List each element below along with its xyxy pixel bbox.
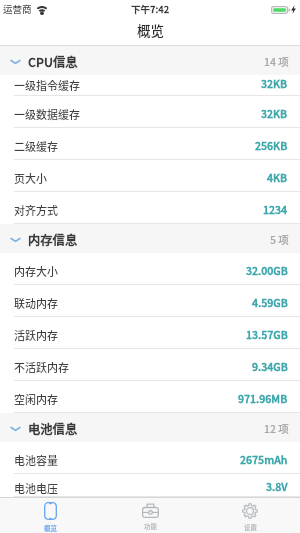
staticText: 活跃内存 bbox=[14, 327, 58, 343]
staticText: 4KB bbox=[267, 170, 288, 185]
button[interactable]: 内存信息 bbox=[0, 224, 300, 253]
staticText: 971.96MB bbox=[238, 391, 288, 406]
staticText: 32.00GB bbox=[246, 263, 288, 278]
staticText: 功能 bbox=[144, 521, 157, 530]
staticText: 概览 bbox=[137, 20, 164, 40]
staticText: 14 项 bbox=[264, 54, 289, 69]
button[interactable]: 一级数据缓存 bbox=[0, 96, 300, 128]
button[interactable]: CPU信息 bbox=[0, 46, 300, 75]
staticText: 空闲内存 bbox=[14, 391, 58, 407]
staticText: 设置 bbox=[244, 522, 257, 531]
button[interactable]: 内存大小 bbox=[0, 253, 300, 285]
button[interactable]: 电池容量 bbox=[0, 442, 300, 474]
staticText: 1234 bbox=[263, 202, 288, 217]
staticText: 3.8V bbox=[266, 479, 288, 494]
staticText: 2675mAh bbox=[240, 452, 288, 467]
staticText: 13.57GB bbox=[246, 327, 288, 342]
button[interactable]: 不活跃内存 bbox=[0, 349, 300, 381]
staticText: 页大小 bbox=[14, 170, 47, 186]
staticText: 电池容量 bbox=[14, 452, 58, 468]
button[interactable]: 概览 bbox=[0, 497, 100, 533]
staticText: 对齐方式 bbox=[14, 202, 58, 218]
button[interactable]: 空闲内存 bbox=[0, 381, 300, 413]
staticText: 12 项 bbox=[264, 421, 289, 436]
staticText: 电池信息 bbox=[28, 420, 78, 438]
staticText: 电池电压 bbox=[14, 480, 58, 496]
staticText: 256KB bbox=[255, 138, 288, 153]
staticText: 概览 bbox=[44, 523, 57, 532]
button[interactable]: 电池电压 bbox=[0, 474, 300, 497]
button[interactable]: 活跃内存 bbox=[0, 317, 300, 349]
staticText: 5 项 bbox=[270, 232, 289, 247]
staticText: 9.34GB bbox=[252, 359, 288, 374]
staticText: 一级数据缓存 bbox=[14, 106, 80, 122]
staticText: 联动内存 bbox=[14, 295, 58, 311]
button[interactable]: 联动内存 bbox=[0, 285, 300, 317]
staticText: 32KB bbox=[261, 106, 288, 121]
staticText: 运营商 bbox=[3, 2, 32, 16]
button[interactable]: 一级指令缓存 bbox=[0, 75, 300, 96]
staticText: 内存信息 bbox=[28, 231, 78, 249]
button[interactable]: 功能 bbox=[100, 497, 200, 533]
button[interactable]: 页大小 bbox=[0, 160, 300, 192]
staticText: 内存大小 bbox=[14, 263, 58, 279]
staticText: 4.59GB bbox=[252, 295, 288, 310]
staticText: 不活跃内存 bbox=[14, 359, 69, 375]
staticText: 一级指令缓存 bbox=[14, 77, 80, 93]
staticText: 下午7:42 bbox=[131, 2, 170, 16]
button[interactable]: 设置 bbox=[200, 497, 300, 533]
staticText: 二级缓存 bbox=[14, 138, 58, 154]
button[interactable]: 电池信息 bbox=[0, 413, 300, 442]
button[interactable]: 二级缓存 bbox=[0, 128, 300, 160]
staticText: CPU信息 bbox=[28, 53, 78, 71]
button[interactable]: 对齐方式 bbox=[0, 192, 300, 224]
staticText: 32KB bbox=[261, 76, 288, 91]
